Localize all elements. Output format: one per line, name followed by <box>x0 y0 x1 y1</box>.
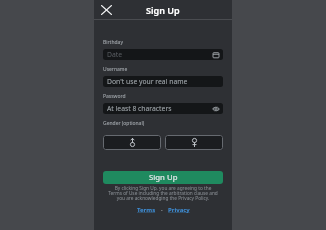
button[interactable]: Male <box>103 135 161 150</box>
staticText: At least 8 characters <box>107 104 172 113</box>
button[interactable]: Don't use your real name <box>103 76 223 87</box>
button[interactable]: Close <box>98 2 114 17</box>
staticText: Date <box>107 50 123 59</box>
staticText: Sign Up <box>146 4 180 16</box>
button[interactable]: Female <box>165 135 223 150</box>
staticText: Gender (optional) <box>103 120 145 127</box>
staticText: Don't use your real name <box>107 77 188 86</box>
staticText: - <box>156 206 168 214</box>
staticText: Birthday <box>103 39 123 46</box>
button[interactable]: Terms <box>137 206 156 214</box>
button[interactable]: Sign Up <box>103 171 223 184</box>
button[interactable]: Date <box>103 49 223 60</box>
staticText: By clicking Sign Up, you are agreeing to… <box>103 185 223 201</box>
button[interactable]: At least 8 characters <box>103 103 223 114</box>
button[interactable]: Privacy <box>168 206 190 214</box>
staticText: Username <box>103 66 128 73</box>
staticText: Sign Up <box>149 172 178 183</box>
staticText: Password <box>103 93 126 100</box>
